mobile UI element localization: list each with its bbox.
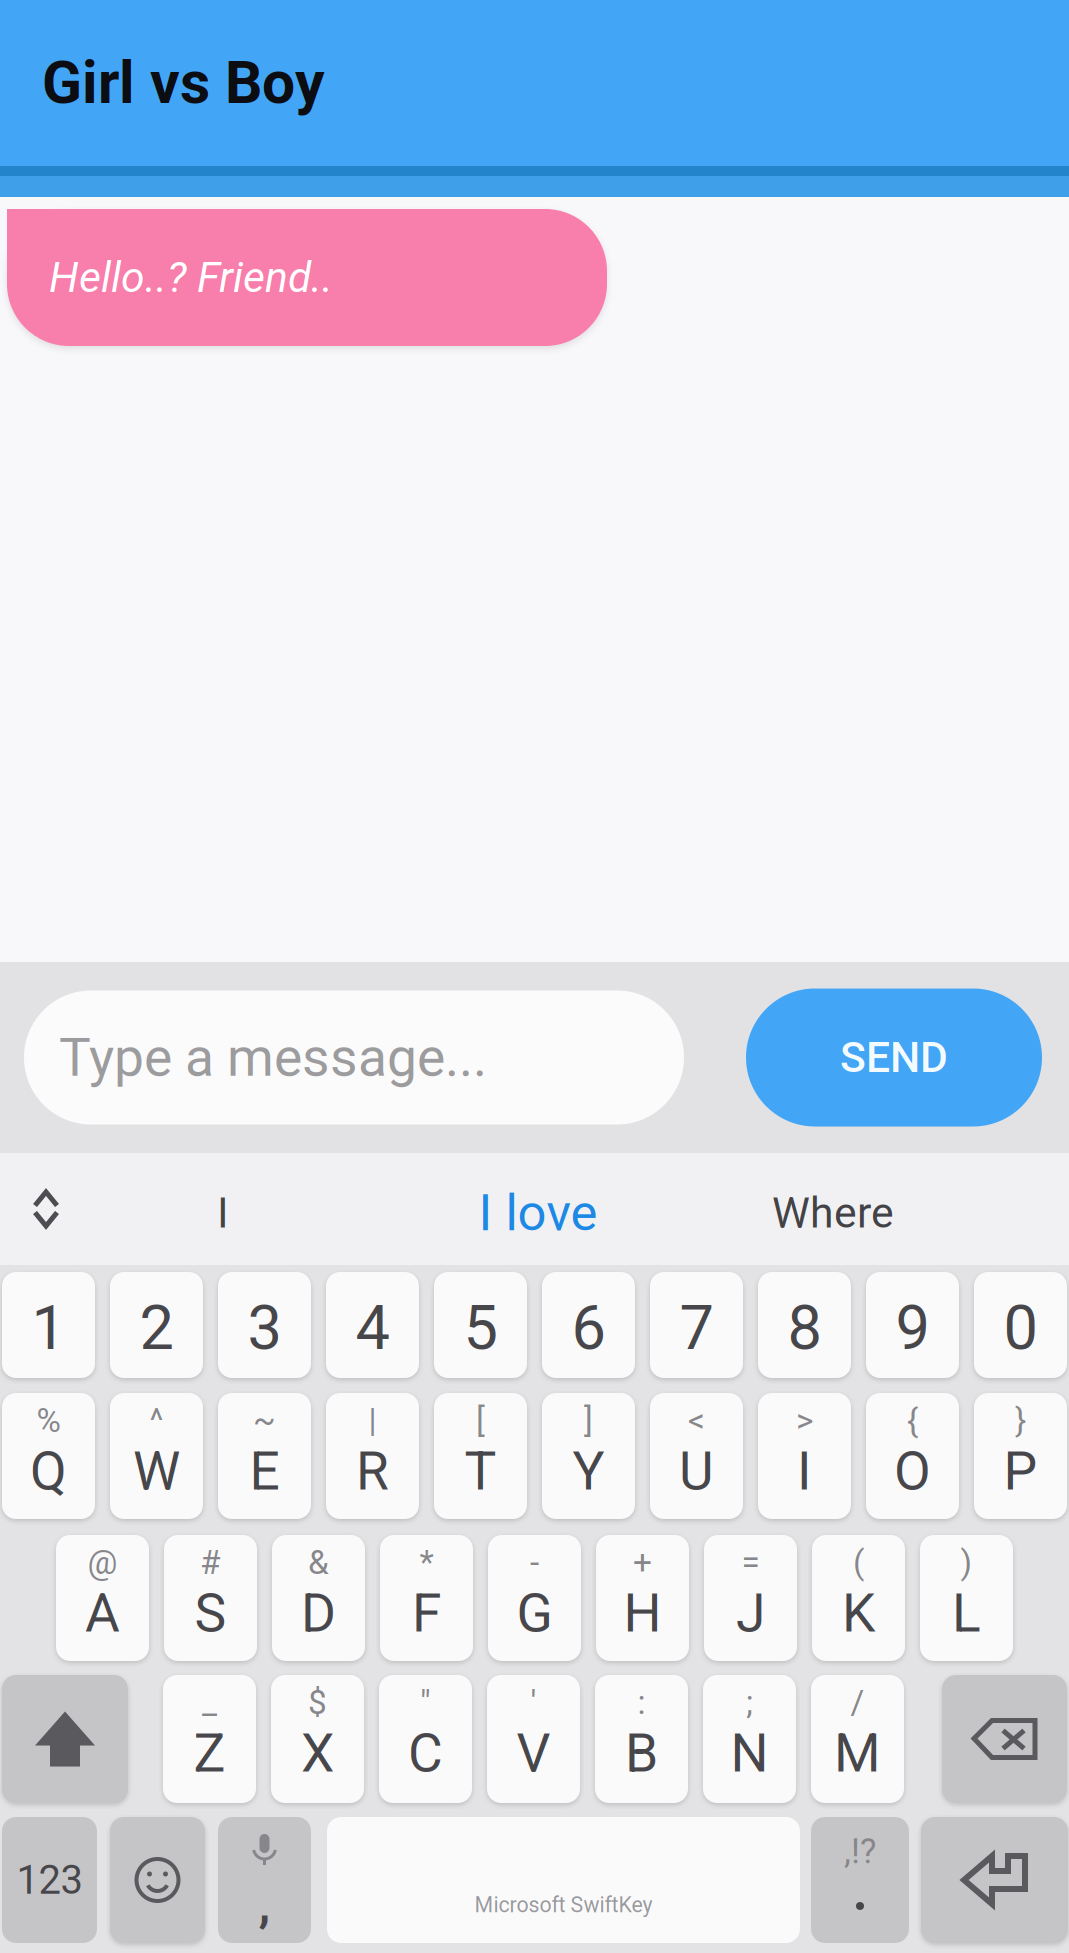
button[interactable]: Emoji	[110, 1817, 205, 1943]
staticText: Girl vs Boy	[42, 49, 325, 117]
staticText: Q	[30, 1440, 67, 1502]
button[interactable]: _	[163, 1675, 256, 1803]
button[interactable]: ]	[542, 1393, 635, 1519]
staticText: %	[36, 1401, 60, 1440]
button[interactable]: &	[272, 1535, 365, 1661]
button[interactable]: I love	[354, 1153, 722, 1265]
button[interactable]: /	[811, 1675, 904, 1803]
staticText: F	[412, 1582, 441, 1644]
staticText: ;	[746, 1683, 753, 1722]
staticText: T	[464, 1440, 496, 1502]
staticText: 123	[16, 1857, 82, 1903]
button[interactable]: I	[92, 1153, 354, 1265]
staticText: 4	[355, 1292, 389, 1364]
staticText: '	[530, 1683, 536, 1722]
staticText: B	[625, 1722, 658, 1784]
button[interactable]: )	[920, 1535, 1013, 1661]
button[interactable]: 2	[110, 1272, 203, 1378]
staticText: Microsoft SwiftKey	[474, 1892, 652, 1917]
staticText: ]	[584, 1401, 593, 1440]
button[interactable]: +	[596, 1535, 689, 1661]
button[interactable]: 123	[2, 1817, 97, 1943]
button[interactable]: ~	[218, 1393, 311, 1519]
staticText: X	[301, 1722, 334, 1784]
staticText: S	[194, 1582, 226, 1644]
button[interactable]: 0	[974, 1272, 1067, 1378]
staticText: "	[420, 1683, 431, 1722]
staticText: /	[850, 1683, 864, 1722]
button[interactable]: <	[650, 1393, 743, 1519]
button[interactable]: (	[812, 1535, 905, 1661]
staticText: Z	[193, 1722, 225, 1784]
staticText: }	[1015, 1401, 1026, 1440]
button[interactable]: *	[380, 1535, 473, 1661]
button[interactable]: 6	[542, 1272, 635, 1378]
staticText: :	[637, 1683, 645, 1722]
staticText: I	[797, 1440, 812, 1502]
staticText: H	[623, 1582, 661, 1644]
staticText: ,!?	[844, 1831, 876, 1872]
button[interactable]: Backspace	[942, 1675, 1067, 1803]
button[interactable]: 1	[2, 1272, 95, 1378]
staticText: J	[736, 1582, 765, 1644]
button[interactable]: :	[595, 1675, 688, 1803]
staticText: L	[952, 1582, 981, 1644]
button[interactable]: Voice input	[218, 1817, 311, 1943]
button[interactable]: 8	[758, 1272, 851, 1378]
button[interactable]: #	[164, 1535, 257, 1661]
button[interactable]: 9	[866, 1272, 959, 1378]
button[interactable]: "	[379, 1675, 472, 1803]
staticText: K	[842, 1582, 875, 1644]
button[interactable]: '	[487, 1675, 580, 1803]
staticText: )	[960, 1543, 972, 1582]
staticText: =	[741, 1543, 759, 1582]
staticText: -	[530, 1543, 539, 1582]
button[interactable]: %	[2, 1393, 95, 1519]
staticText: +	[633, 1543, 652, 1582]
staticText: E	[249, 1440, 279, 1502]
button[interactable]: Enter	[921, 1817, 1068, 1943]
staticText: >	[796, 1401, 813, 1440]
staticText: <	[688, 1401, 705, 1440]
button[interactable]: Shift	[2, 1675, 128, 1803]
staticText: SEND	[840, 1032, 948, 1082]
button[interactable]: ^	[110, 1393, 203, 1519]
button[interactable]: >	[758, 1393, 851, 1519]
button[interactable]: 3	[218, 1272, 311, 1378]
button[interactable]: Where	[722, 1153, 944, 1265]
button[interactable]: [	[434, 1393, 527, 1519]
button[interactable]: =	[704, 1535, 797, 1661]
button[interactable]: 7	[650, 1272, 743, 1378]
staticText: I	[217, 1188, 229, 1238]
button[interactable]: 4	[326, 1272, 419, 1378]
button[interactable]: |	[326, 1393, 419, 1519]
button[interactable]: @	[56, 1535, 149, 1661]
staticText: M	[834, 1722, 881, 1784]
button[interactable]: 5	[434, 1272, 527, 1378]
button[interactable]: $	[271, 1675, 364, 1803]
staticText: 1	[31, 1292, 65, 1364]
button[interactable]: ;	[703, 1675, 796, 1803]
button[interactable]: SEND	[746, 988, 1042, 1126]
staticText: ^	[149, 1401, 163, 1440]
staticText: 2	[139, 1292, 173, 1364]
staticText: Hello..? Friend..	[49, 252, 333, 302]
staticText: |	[368, 1401, 376, 1440]
button[interactable]: Expand predictions	[0, 1153, 92, 1265]
staticText: (	[853, 1543, 864, 1582]
button[interactable]: {	[866, 1393, 959, 1519]
staticText: 6	[571, 1292, 605, 1364]
button[interactable]: -	[488, 1535, 581, 1661]
staticText: W	[133, 1440, 180, 1502]
staticText: $	[308, 1683, 327, 1722]
staticText: &	[308, 1543, 329, 1582]
staticText: ~	[253, 1401, 276, 1440]
staticText: _	[202, 1683, 217, 1722]
staticText: 3	[247, 1292, 281, 1364]
button[interactable]: Space	[327, 1817, 800, 1943]
staticText: #	[200, 1543, 221, 1582]
staticText: U	[679, 1440, 714, 1502]
button[interactable]: Punctuation	[811, 1817, 909, 1943]
button[interactable]: Type a message...	[24, 990, 684, 1124]
button[interactable]: }	[974, 1393, 1067, 1519]
